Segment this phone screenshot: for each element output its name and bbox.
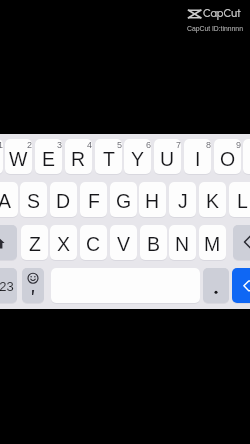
staticText: D	[56, 190, 71, 212]
button[interactable]: Y	[124, 139, 151, 174]
staticText: 8	[206, 140, 211, 150]
button[interactable]: S	[20, 182, 47, 217]
staticText: W	[9, 148, 28, 170]
staticText: L	[237, 190, 248, 212]
button[interactable]: D	[50, 182, 77, 217]
staticText: 5	[117, 140, 122, 150]
button[interactable]: Q	[0, 139, 3, 174]
button[interactable]: L	[229, 182, 250, 217]
button[interactable]: T	[95, 139, 122, 174]
staticText: S	[27, 190, 41, 212]
staticText: R	[71, 148, 86, 170]
staticText: CapCut	[203, 7, 241, 20]
button[interactable]: W	[5, 139, 32, 174]
button[interactable]: Numbers	[0, 268, 17, 303]
button[interactable]: J	[169, 182, 196, 217]
button[interactable]: O	[214, 139, 241, 174]
button[interactable]: M	[199, 225, 226, 260]
button[interactable]: Backspace	[233, 225, 250, 260]
staticText: A	[0, 190, 12, 212]
button[interactable]: Send	[232, 268, 250, 303]
staticText: U	[160, 148, 175, 170]
staticText: F	[88, 190, 100, 212]
staticText: O	[220, 148, 236, 170]
staticText: X	[57, 233, 71, 255]
staticText: K	[206, 190, 220, 212]
button[interactable]: F	[80, 182, 107, 217]
staticText: E	[42, 148, 56, 170]
staticText: 6	[146, 140, 151, 150]
staticText: 1	[0, 140, 3, 150]
staticText: T	[103, 148, 115, 170]
button[interactable]: U	[154, 139, 181, 174]
button[interactable]: R	[65, 139, 92, 174]
button[interactable]: C	[80, 225, 107, 260]
staticText: N	[175, 233, 190, 255]
staticText: 7	[176, 140, 181, 150]
staticText: 123	[0, 279, 14, 294]
staticText: 2	[27, 140, 32, 150]
staticText: Y	[131, 148, 145, 170]
staticText: Z	[29, 233, 41, 255]
staticText: B	[147, 233, 161, 255]
button[interactable]: I	[184, 139, 211, 174]
button[interactable]: B	[140, 225, 167, 260]
button[interactable]: K	[199, 182, 226, 217]
button[interactable]: E	[35, 139, 62, 174]
button[interactable]: Period	[203, 268, 229, 303]
staticText: J	[178, 190, 188, 212]
button[interactable]: Z	[21, 225, 48, 260]
staticText: CapCut ID:tinnnnn	[187, 25, 243, 33]
button[interactable]: A	[0, 182, 18, 217]
staticText: M	[204, 233, 221, 255]
staticText: 9	[236, 140, 241, 150]
staticText: 3	[57, 140, 62, 150]
staticText: 4	[87, 140, 92, 150]
button[interactable]: V	[110, 225, 137, 260]
button[interactable]: P	[243, 139, 250, 174]
staticText: I	[195, 148, 201, 170]
button[interactable]: Shift	[0, 225, 17, 260]
button[interactable]: X	[50, 225, 77, 260]
button[interactable]: G	[110, 182, 137, 217]
staticText: V	[117, 233, 131, 255]
staticText: G	[116, 190, 132, 212]
button[interactable]: N	[169, 225, 196, 260]
staticText: H	[145, 190, 160, 212]
button[interactable]: H	[139, 182, 166, 217]
button[interactable]: Emoji and comma	[22, 268, 44, 303]
staticText: C	[86, 233, 101, 255]
